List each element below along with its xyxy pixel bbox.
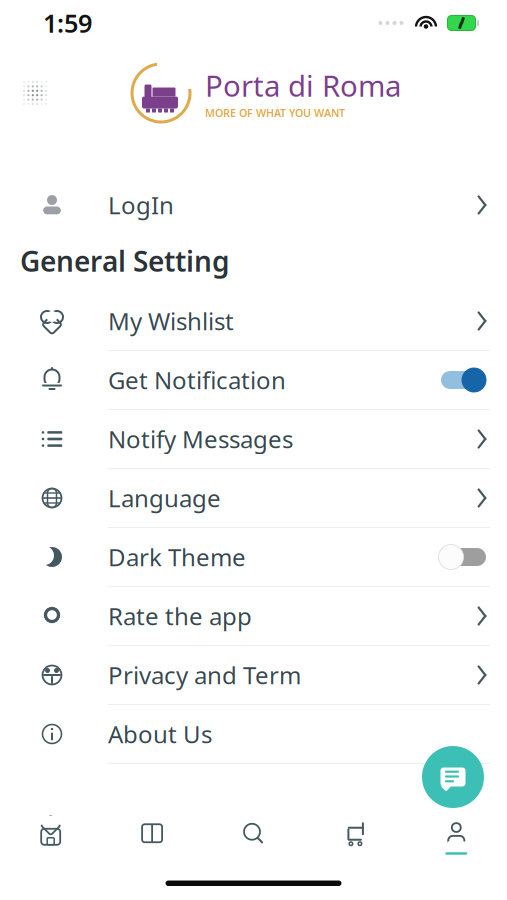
button[interactable]: Language xyxy=(0,469,507,528)
button[interactable]: Get Notification xyxy=(0,351,507,410)
staticText: Language xyxy=(108,482,221,514)
button[interactable]: Chat with support xyxy=(422,746,484,808)
staticText: Privacy and Term xyxy=(108,659,301,691)
button[interactable]: Cart xyxy=(304,808,406,866)
button[interactable]: Account xyxy=(406,808,507,866)
staticText: MORE OF WHAT YOU WANT xyxy=(205,106,345,120)
staticText: Notify Messages xyxy=(108,423,293,455)
staticText: General Setting xyxy=(20,242,230,280)
button[interactable]: Privacy and Term xyxy=(0,646,507,705)
button[interactable]: Search xyxy=(203,808,304,866)
button[interactable]: About Us xyxy=(0,705,507,764)
button[interactable]: Rate the app xyxy=(0,587,507,646)
staticText: Get Notification xyxy=(108,364,286,396)
staticText: Rate the app xyxy=(108,600,252,632)
button[interactable]: Notify Messages xyxy=(0,410,507,469)
staticText: My Wishlist xyxy=(108,305,234,337)
staticText: About Us xyxy=(108,718,212,750)
button[interactable]: Menu xyxy=(19,77,51,109)
staticText: Dark Theme xyxy=(108,541,246,573)
staticText: Porta di Roma xyxy=(205,66,401,105)
button[interactable]: My Wishlist xyxy=(0,292,507,351)
staticText: LogIn xyxy=(108,189,174,221)
button[interactable]: LogIn xyxy=(0,180,507,230)
button[interactable]: Dark Theme xyxy=(0,528,507,587)
button[interactable]: Catalog xyxy=(101,808,203,866)
staticText: 1:59 xyxy=(43,6,92,40)
button[interactable]: Home xyxy=(0,808,101,866)
